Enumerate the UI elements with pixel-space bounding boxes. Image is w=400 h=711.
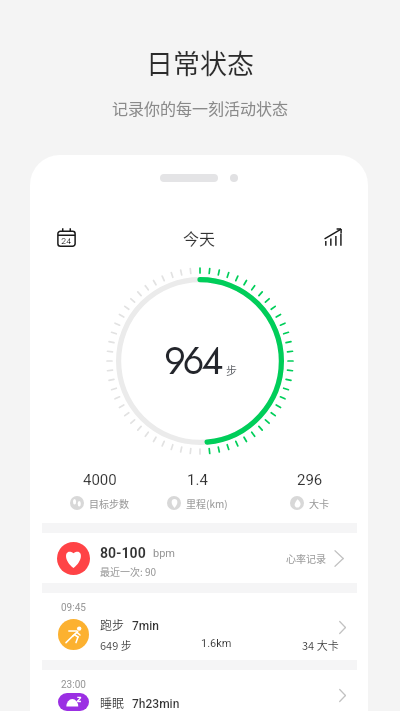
staticText: 里程(km) — [186, 496, 228, 510]
staticText: 1.4 — [187, 471, 208, 489]
staticText: 心率记录 — [286, 551, 326, 565]
staticText: 649 步 — [100, 637, 201, 652]
staticText: 记录你的每一刻活动状态 — [112, 96, 289, 119]
staticText: 大卡 — [309, 496, 329, 510]
button[interactable]: Statistics — [318, 222, 348, 252]
staticText: 最近一次: 90 — [100, 564, 157, 578]
staticText: 24 — [61, 234, 72, 247]
staticText: 09:45 — [61, 602, 86, 614]
staticText: 964 — [164, 333, 221, 388]
staticText: 目标步数 — [89, 496, 129, 510]
staticText: bpm — [153, 547, 175, 560]
staticText: 34 大卡 — [302, 637, 339, 652]
staticText: 睡眠 — [100, 694, 125, 711]
staticText: 跑步 — [100, 616, 125, 633]
button[interactable]: 09:45 — [42, 593, 357, 660]
staticText: 4000 — [83, 471, 117, 489]
button[interactable]: Calendar — [51, 222, 81, 252]
staticText: 步 — [226, 362, 237, 378]
staticText: 296 — [297, 471, 323, 489]
staticText: 80-100 — [100, 545, 146, 561]
staticText: 7min — [132, 619, 160, 633]
staticText: 日常状态 — [146, 43, 254, 82]
staticText: 7h23min — [132, 697, 180, 711]
staticText: 1.6km — [201, 637, 302, 650]
staticText: 23:00 — [61, 679, 86, 691]
staticText: 今天 — [183, 226, 216, 249]
button[interactable]: 80-100 — [42, 533, 357, 583]
button[interactable]: 23:00 — [42, 670, 357, 711]
